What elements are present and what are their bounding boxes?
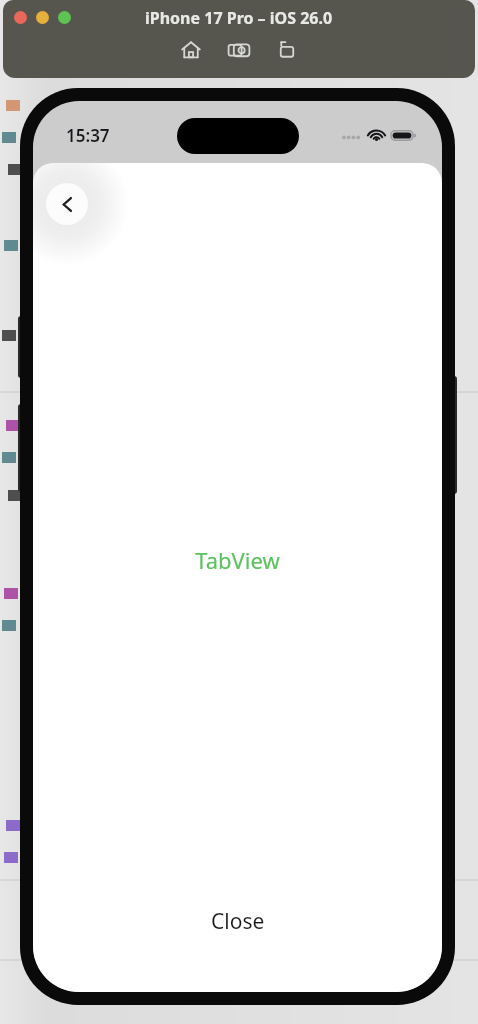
button[interactable] (36, 11, 49, 24)
button[interactable]: Home (178, 37, 204, 63)
staticText: TabView (195, 545, 280, 575)
button[interactable]: Record (274, 37, 300, 63)
button[interactable]: Back (46, 183, 88, 225)
button[interactable]: Screenshot (226, 37, 252, 63)
button[interactable] (58, 11, 71, 24)
staticText: iPhone 17 Pro – iOS 26.0 (145, 7, 333, 29)
button[interactable] (14, 11, 27, 24)
button[interactable]: Close (193, 899, 283, 944)
staticText: Close (211, 907, 265, 936)
staticText: 15:37 (66, 124, 110, 147)
